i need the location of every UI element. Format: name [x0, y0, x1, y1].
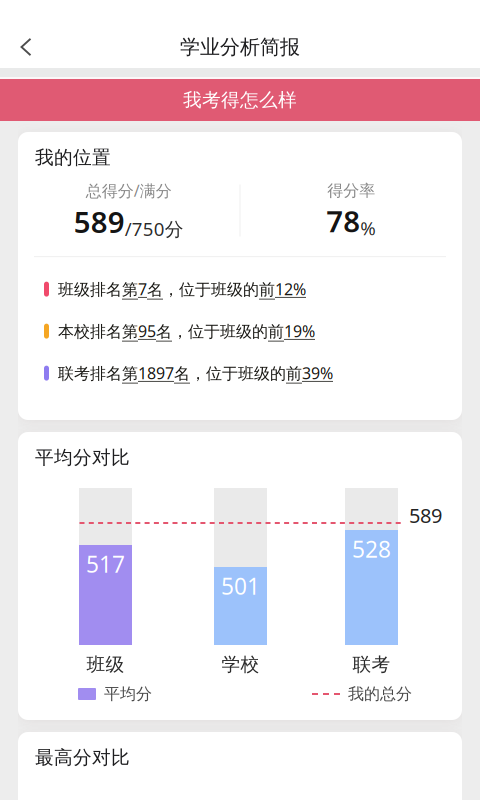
staticText: %: [360, 215, 376, 240]
staticText: 我考得怎么样: [183, 88, 297, 111]
staticText: 联考: [352, 653, 390, 676]
staticText: 总得分/满分: [86, 180, 172, 201]
button[interactable]: 我考得怎么样: [0, 79, 480, 121]
staticText: 528: [352, 534, 391, 564]
staticText: 班级: [86, 653, 124, 676]
staticText: 最高分对比: [35, 746, 130, 769]
staticText: /750分: [125, 216, 184, 241]
staticText: 平均分: [104, 684, 152, 704]
staticText: 联考排名第1897名，位于班级的前39%: [58, 362, 333, 384]
staticText: 我的总分: [348, 684, 412, 704]
staticText: 平均分对比: [35, 446, 130, 469]
staticText: 班级排名第7名，位于班级的前12%: [58, 278, 306, 300]
staticText: 589: [409, 502, 442, 529]
staticText: 学业分析简报: [180, 35, 300, 59]
staticText: 学校: [221, 653, 259, 676]
staticText: 517: [86, 549, 125, 579]
button[interactable]: 返回: [0, 12, 44, 56]
staticText: 501: [221, 571, 260, 601]
staticText: 我的位置: [35, 146, 111, 169]
staticText: 本校排名第95名，位于班级的前19%: [58, 320, 315, 342]
staticText: 78: [326, 201, 360, 240]
staticText: 589: [74, 202, 125, 241]
staticText: 得分率: [327, 181, 375, 200]
